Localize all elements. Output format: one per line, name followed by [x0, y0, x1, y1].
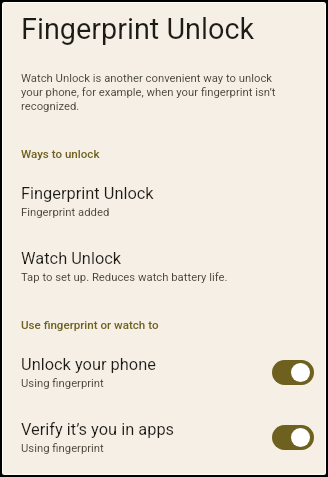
- staticText: Ways to unlock: [21, 147, 100, 161]
- staticText: Use fingerprint or watch to: [21, 318, 159, 332]
- staticText: Verify it’s you in apps: [21, 420, 175, 439]
- staticText: Tap to set up. Reduces watch battery lif…: [21, 271, 228, 284]
- staticText: Using fingerprint: [21, 377, 104, 390]
- button[interactable]: Unlock your phone: [3, 355, 325, 399]
- button[interactable]: Toggle Unlock your phone: [272, 360, 314, 385]
- staticText: Fingerprint Unlock: [21, 184, 154, 203]
- staticText: Using fingerprint: [21, 442, 104, 455]
- staticText: Fingerprint Unlock: [21, 12, 255, 46]
- button[interactable]: Fingerprint Unlock: [3, 184, 325, 228]
- button[interactable]: Toggle Verify it’s you in apps: [272, 425, 314, 450]
- staticText: Fingerprint added: [21, 206, 110, 219]
- button[interactable]: Verify it’s you in apps: [3, 420, 325, 464]
- staticText: Unlock your phone: [21, 355, 156, 374]
- button[interactable]: Watch Unlock: [3, 249, 325, 293]
- staticText: Watch Unlock: [21, 249, 122, 268]
- staticText: Watch Unlock is another convenient way t…: [21, 72, 289, 113]
